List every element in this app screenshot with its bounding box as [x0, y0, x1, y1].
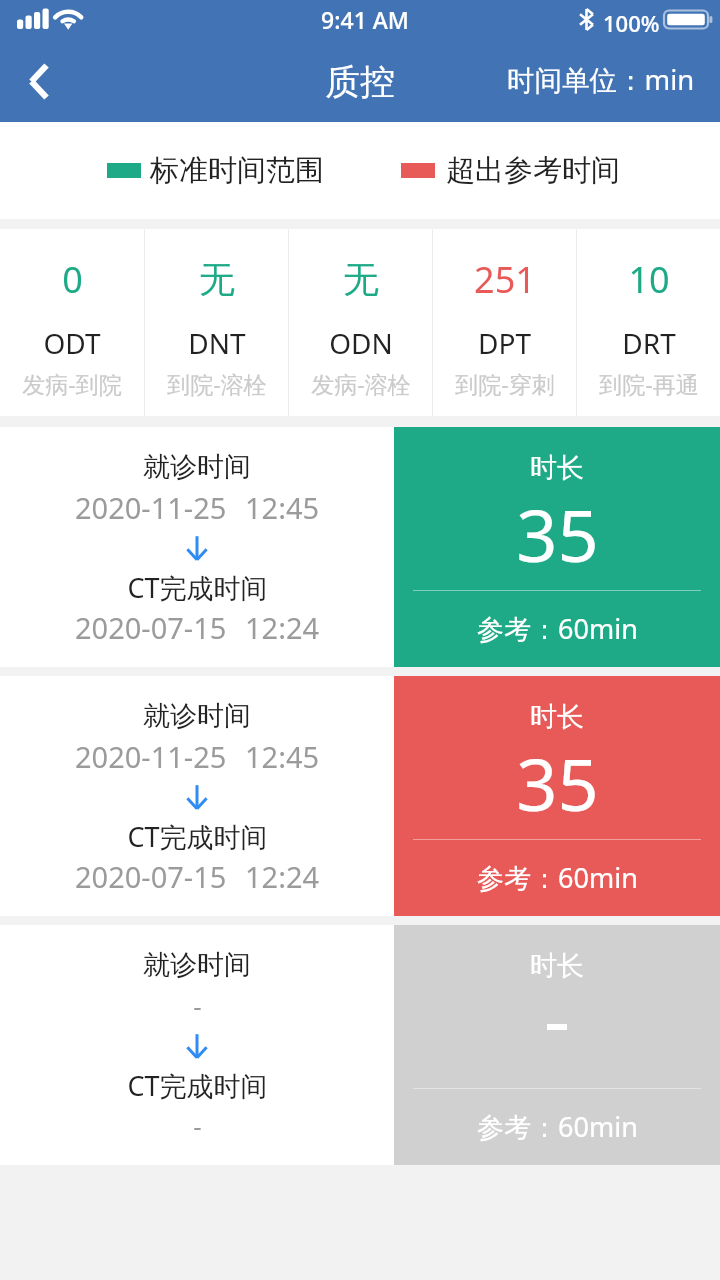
- staticText: 10: [628, 255, 670, 304]
- button[interactable]: 无: [289, 229, 432, 416]
- staticText: 2020-07-15: [75, 608, 227, 647]
- button[interactable]: 就诊时间: [0, 676, 720, 916]
- button[interactable]: Back: [0, 46, 78, 122]
- staticText: 251: [474, 255, 536, 304]
- staticText: 12:45: [245, 488, 320, 527]
- staticText: 到院-穿刺: [455, 368, 555, 399]
- staticText: CT完成时间: [127, 818, 268, 855]
- staticText: 时间单位：min: [507, 61, 695, 99]
- button[interactable]: 251: [433, 229, 576, 416]
- staticText: 12:45: [245, 737, 320, 776]
- button[interactable]: 标准时间范围: [107, 152, 324, 189]
- staticText: 时长: [530, 451, 584, 485]
- staticText: 就诊时间: [143, 948, 251, 982]
- staticText: 时长: [530, 700, 584, 734]
- staticText: CT完成时间: [127, 1067, 268, 1104]
- staticText: 标准时间范围: [150, 152, 324, 189]
- staticText: 就诊时间: [143, 699, 251, 733]
- staticText: 35: [516, 485, 599, 583]
- staticText: 2020-11-25: [75, 488, 227, 527]
- staticText: 参考：60min: [477, 610, 638, 647]
- staticText: DNT: [188, 324, 246, 362]
- button[interactable]: 就诊时间: [0, 925, 720, 1165]
- staticText: 质控: [325, 60, 395, 104]
- staticText: 参考：60min: [477, 1108, 638, 1145]
- staticText: 12:24: [245, 857, 320, 896]
- staticText: 到院-溶栓: [167, 368, 267, 399]
- staticText: 时长: [530, 949, 584, 983]
- staticText: 到院-再通: [599, 368, 699, 399]
- staticText: 无: [199, 257, 235, 302]
- button[interactable]: 10: [577, 229, 720, 416]
- staticText: DRT: [622, 324, 676, 362]
- staticText: 2020-07-15: [75, 857, 227, 896]
- button[interactable]: 0: [0, 229, 144, 416]
- staticText: DPT: [478, 324, 531, 362]
- staticText: 发病-到院: [22, 368, 122, 399]
- staticText: 100%: [603, 8, 660, 38]
- button[interactable]: 无: [145, 229, 288, 416]
- staticText: 9:41 AM: [321, 4, 409, 35]
- staticText: -: [193, 1108, 202, 1143]
- button[interactable]: 时间单位：min: [507, 42, 695, 118]
- staticText: 12:24: [245, 608, 320, 647]
- staticText: 2020-11-25: [75, 737, 227, 776]
- staticText: -: [193, 988, 202, 1023]
- staticText: 就诊时间: [143, 450, 251, 484]
- staticText: 0: [62, 255, 83, 304]
- staticText: 35: [516, 734, 599, 832]
- staticText: CT完成时间: [127, 569, 268, 606]
- staticText: 发病-溶栓: [311, 368, 411, 399]
- staticText: ODN: [329, 324, 393, 362]
- staticText: 超出参考时间: [446, 152, 620, 189]
- button[interactable]: 就诊时间: [0, 427, 720, 667]
- button[interactable]: 超出参考时间: [401, 152, 620, 189]
- staticText: 参考：60min: [477, 859, 638, 896]
- staticText: 无: [343, 257, 379, 302]
- staticText: ODT: [43, 324, 101, 362]
